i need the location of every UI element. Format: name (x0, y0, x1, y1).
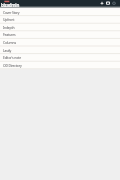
button[interactable]: Lastly (0, 46, 120, 54)
button[interactable]: Camera (105, 0, 111, 7)
button[interactable]: More options (111, 0, 117, 7)
button[interactable]: OD Directory (0, 61, 120, 69)
button[interactable]: Columns (0, 38, 120, 46)
staticText: Columns (3, 40, 16, 45)
button[interactable]: Editor's note (0, 53, 120, 61)
staticText: Cover Story (3, 10, 20, 15)
staticText: Upfront (3, 17, 15, 22)
staticText: Editor's note (3, 55, 21, 60)
staticText: Indepth (3, 25, 15, 30)
button[interactable]: Upfront (0, 15, 120, 23)
button[interactable]: Cover Story (0, 8, 120, 16)
staticText: bizadmin (1, 2, 19, 8)
button[interactable]: Favourite (99, 0, 105, 7)
staticText: Lastly (3, 48, 12, 53)
staticText: Features (3, 32, 16, 37)
button[interactable]: Indepth (0, 23, 120, 31)
button[interactable]: Features (0, 30, 120, 38)
staticText: OD Directory (3, 63, 22, 68)
